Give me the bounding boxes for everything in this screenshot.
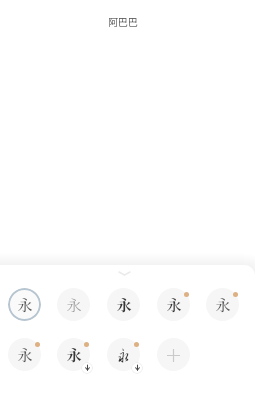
button[interactable]: Collapse panel: [109, 266, 139, 280]
staticText: 阿巴巴: [108, 14, 138, 28]
button[interactable]: 永: [107, 288, 140, 321]
button[interactable]: 永: [8, 338, 41, 371]
button[interactable]: Add font: [157, 338, 190, 371]
staticText: 永: [116, 348, 131, 364]
button[interactable]: Download font: [81, 362, 93, 374]
staticText: 永: [66, 294, 82, 316]
button[interactable]: 永: [157, 288, 190, 321]
button[interactable]: 永: [57, 288, 90, 321]
button[interactable]: 永: [57, 338, 90, 371]
staticText: 永: [17, 344, 33, 366]
staticText: 永: [116, 294, 132, 316]
button[interactable]: 永: [206, 288, 239, 321]
staticText: 永: [166, 294, 182, 316]
staticText: 永: [215, 294, 231, 316]
button[interactable]: 永: [8, 288, 41, 321]
button[interactable]: 永: [107, 338, 140, 371]
staticText: 永: [17, 294, 33, 316]
button[interactable]: Download font: [131, 362, 143, 374]
staticText: 永: [66, 344, 82, 366]
